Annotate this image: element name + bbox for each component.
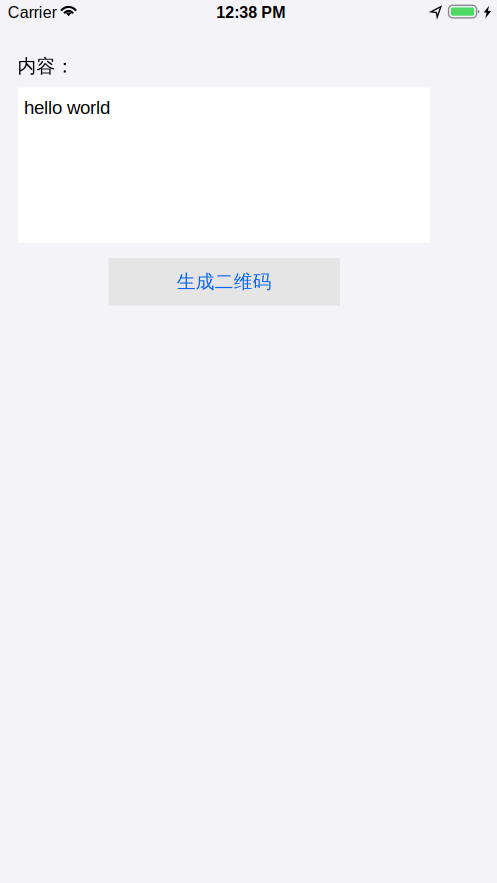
button[interactable]: hello world (18, 87, 430, 243)
staticText: hello world (24, 97, 110, 118)
staticText: 12:38 PM (216, 3, 285, 21)
staticText: 生成二维码 (177, 270, 272, 294)
button[interactable]: 生成二维码 (108, 258, 340, 306)
staticText: 内容： (17, 55, 74, 78)
staticText: Carrier (8, 3, 57, 21)
